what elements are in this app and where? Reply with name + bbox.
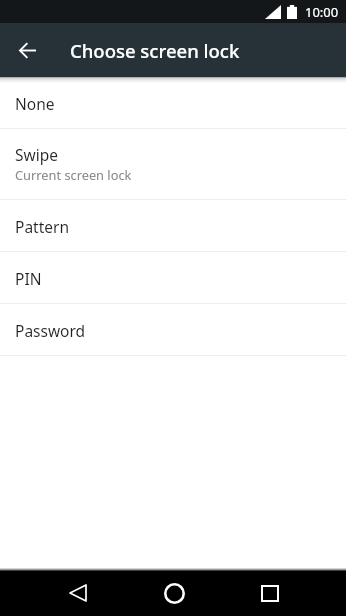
button[interactable]: PIN <box>0 252 346 303</box>
button[interactable]: Recent apps <box>246 569 294 616</box>
button[interactable]: Home <box>150 569 198 616</box>
staticText: None <box>15 93 55 114</box>
staticText: Choose screen lock <box>70 38 240 63</box>
button[interactable]: Swipe <box>0 129 346 199</box>
button[interactable]: Back <box>54 569 102 616</box>
staticText: PIN <box>15 268 42 289</box>
staticText: Pattern <box>15 216 69 237</box>
button[interactable]: Password <box>0 304 346 355</box>
button[interactable]: Pattern <box>0 200 346 251</box>
staticText: Password <box>15 320 86 341</box>
staticText: Current screen lock <box>15 166 132 183</box>
staticText: 10:00 <box>305 3 339 21</box>
button[interactable]: None <box>0 77 346 128</box>
staticText: Swipe <box>15 144 58 165</box>
button[interactable]: Navigate up <box>7 29 49 71</box>
